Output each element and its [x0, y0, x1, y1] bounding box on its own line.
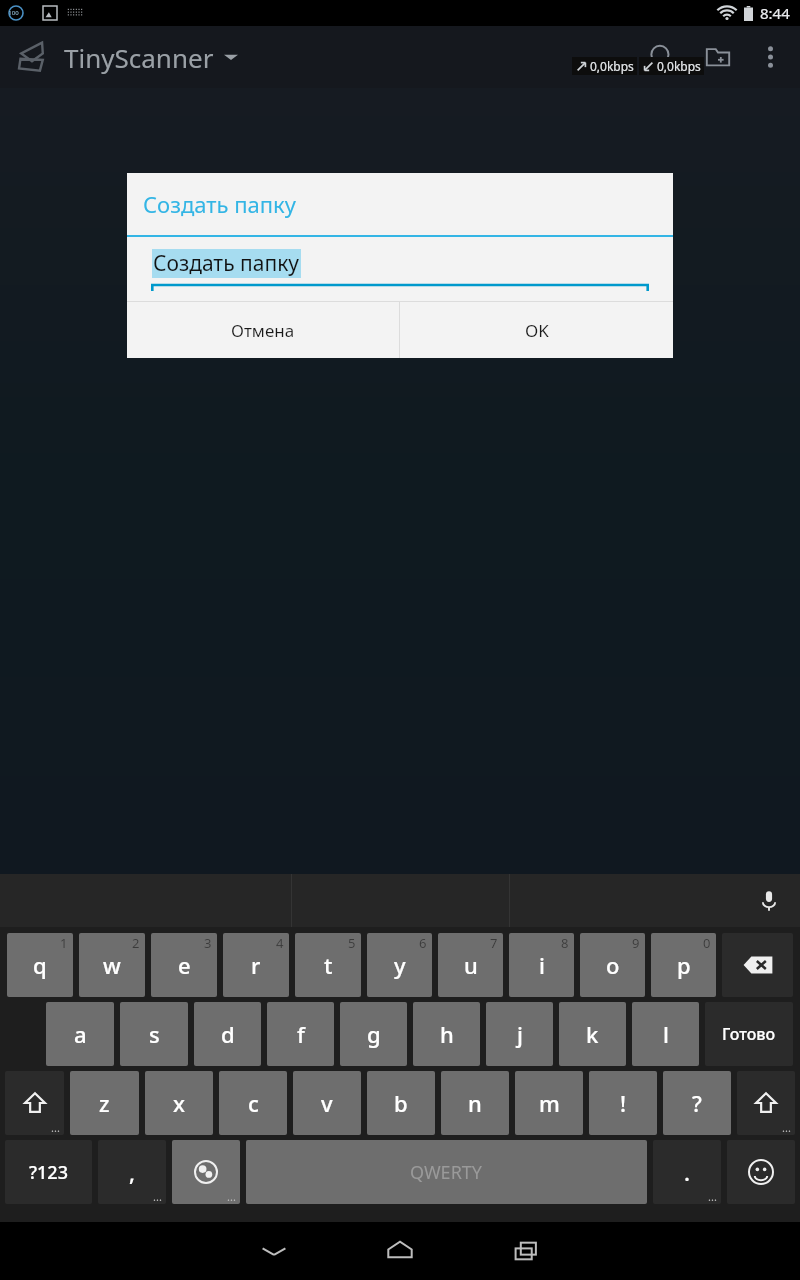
- button[interactable]: .: [653, 1140, 721, 1204]
- button[interactable]: w: [79, 933, 145, 997]
- staticText: ...: [708, 1189, 717, 1204]
- button[interactable]: Готово: [705, 1002, 793, 1066]
- button[interactable]: k: [559, 1002, 626, 1066]
- staticText: .: [684, 1157, 690, 1187]
- button[interactable]: New folder: [690, 29, 746, 85]
- staticText: ...: [51, 1120, 60, 1135]
- staticText: s: [149, 1019, 160, 1049]
- button[interactable]: z: [70, 1071, 139, 1135]
- staticText: r: [251, 950, 261, 980]
- staticText: b: [394, 1088, 408, 1118]
- button[interactable]: o: [580, 933, 645, 997]
- button[interactable]: b: [367, 1071, 435, 1135]
- staticText: h: [440, 1019, 454, 1049]
- button[interactable]: m: [515, 1071, 583, 1135]
- button[interactable]: ?123: [5, 1140, 92, 1204]
- button[interactable]: v: [293, 1071, 361, 1135]
- button[interactable]: ?: [663, 1071, 731, 1135]
- staticText: ...: [782, 1120, 791, 1135]
- staticText: v: [321, 1088, 333, 1118]
- staticText: !: [620, 1088, 627, 1118]
- staticText: a: [74, 1019, 87, 1049]
- button[interactable]: Shift: [737, 1071, 795, 1135]
- button[interactable]: Emoji: [727, 1140, 795, 1204]
- staticText: 6: [419, 934, 427, 952]
- staticText: 1: [60, 934, 68, 952]
- staticText: Создать папку: [143, 189, 296, 219]
- staticText: g: [367, 1019, 381, 1049]
- button[interactable]: QWERTY: [246, 1140, 647, 1204]
- button[interactable]: Отмена: [127, 302, 399, 358]
- staticText: Создать папку: [153, 249, 300, 278]
- staticText: o: [606, 950, 620, 980]
- button[interactable]: x: [145, 1071, 213, 1135]
- button[interactable]: OK: [400, 302, 673, 358]
- button[interactable]: Shift: [5, 1071, 64, 1135]
- staticText: 5: [348, 934, 356, 952]
- staticText: m: [539, 1088, 560, 1118]
- button[interactable]: i: [509, 933, 574, 997]
- button[interactable]: q: [7, 933, 73, 997]
- button[interactable]: f: [267, 1002, 334, 1066]
- staticText: ,: [129, 1157, 136, 1187]
- staticText: 2: [132, 934, 140, 952]
- staticText: 100: [8, 9, 19, 17]
- button[interactable]: g: [340, 1002, 407, 1066]
- button[interactable]: a: [46, 1002, 114, 1066]
- staticText: u: [464, 950, 478, 980]
- button[interactable]: l: [632, 1002, 699, 1066]
- button[interactable]: d: [194, 1002, 261, 1066]
- staticText: k: [586, 1019, 599, 1049]
- button[interactable]: More options: [746, 33, 794, 81]
- button[interactable]: Change language: [172, 1140, 240, 1204]
- staticText: ...: [227, 1189, 236, 1204]
- button[interactable]: TinyScanner: [14, 39, 238, 75]
- staticText: z: [99, 1088, 110, 1118]
- staticText: c: [248, 1088, 259, 1118]
- staticText: 3: [204, 934, 212, 952]
- staticText: j: [517, 1019, 523, 1049]
- button[interactable]: Voice input: [752, 884, 786, 918]
- staticText: d: [221, 1019, 235, 1049]
- staticText: Отмена: [231, 319, 295, 342]
- staticText: p: [677, 950, 691, 980]
- staticText: y: [394, 950, 406, 980]
- button[interactable]: n: [441, 1071, 509, 1135]
- staticText: i: [539, 950, 545, 980]
- staticText: ?123: [29, 1160, 68, 1185]
- button[interactable]: t: [295, 933, 361, 997]
- staticText: 7: [490, 934, 498, 952]
- button[interactable]: p: [651, 933, 716, 997]
- button[interactable]: u: [438, 933, 503, 997]
- button[interactable]: j: [486, 1002, 553, 1066]
- button[interactable]: s: [120, 1002, 188, 1066]
- staticText: w: [103, 950, 121, 980]
- staticText: Готово: [722, 1023, 776, 1045]
- button[interactable]: e: [151, 933, 217, 997]
- staticText: 0,0kbps: [590, 58, 634, 74]
- staticText: q: [33, 950, 47, 980]
- staticText: ?: [692, 1088, 702, 1118]
- button[interactable]: r: [223, 933, 289, 997]
- staticText: x: [173, 1088, 185, 1118]
- staticText: e: [178, 950, 191, 980]
- staticText: ...: [153, 1189, 162, 1204]
- button[interactable]: Hide keyboard: [242, 1222, 306, 1280]
- button[interactable]: c: [219, 1071, 287, 1135]
- button[interactable]: h: [413, 1002, 480, 1066]
- button[interactable]: y: [367, 933, 432, 997]
- button[interactable]: Backspace: [722, 933, 793, 997]
- staticText: QWERTY: [410, 1160, 483, 1185]
- button[interactable]: Home: [368, 1222, 432, 1280]
- staticText: 0: [703, 934, 711, 952]
- staticText: 8:44: [760, 3, 790, 23]
- staticText: 0,0kbps: [657, 58, 701, 74]
- staticText: 8: [561, 934, 569, 952]
- staticText: OK: [525, 319, 549, 342]
- button[interactable]: !: [589, 1071, 657, 1135]
- staticText: 4: [276, 934, 284, 952]
- button[interactable]: ,: [98, 1140, 166, 1204]
- button[interactable]: Search: [634, 29, 690, 85]
- button[interactable]: Recent apps: [494, 1222, 558, 1280]
- button[interactable]: Создать папку: [152, 249, 301, 278]
